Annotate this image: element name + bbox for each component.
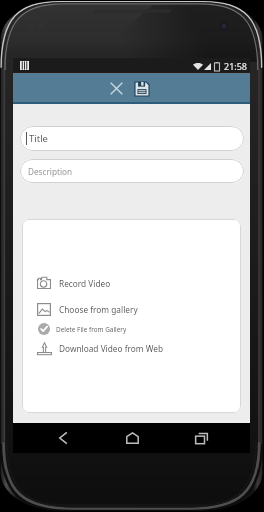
staticText: Title [29, 132, 48, 145]
staticText: Download Video from Web [59, 343, 164, 354]
button[interactable]: Description [20, 159, 244, 183]
button[interactable]: Home [120, 426, 144, 450]
staticText: Description [28, 166, 73, 177]
button[interactable]: Save [129, 76, 154, 101]
button[interactable]: Title [20, 126, 244, 151]
button[interactable]: Record Video [22, 274, 241, 292]
staticText: Choose from gallery [59, 304, 138, 315]
button[interactable]: Choose from gallery [22, 300, 241, 318]
button[interactable]: Close [104, 76, 129, 101]
staticText: Delete File from Gallery [56, 325, 127, 334]
button[interactable]: Delete File from Gallery [22, 320, 241, 338]
button[interactable]: Download Video from Web [22, 339, 241, 357]
button[interactable]: Back [51, 426, 75, 450]
button[interactable]: Recent apps [189, 426, 213, 450]
staticText: 21:58 [224, 60, 248, 72]
staticText: Record Video [59, 278, 111, 289]
